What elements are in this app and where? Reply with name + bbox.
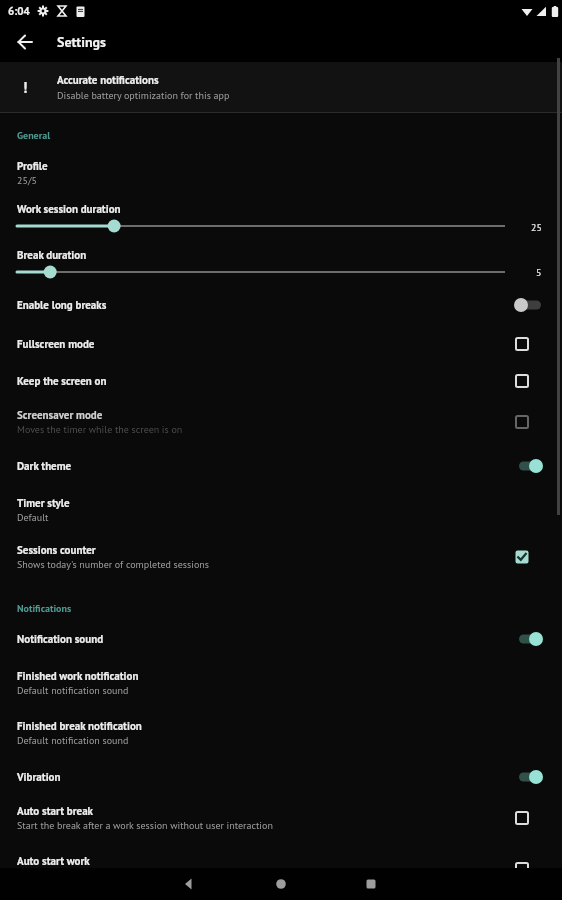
button[interactable]: Timer style <box>0 487 562 533</box>
staticText: 25/5 <box>17 174 37 187</box>
button[interactable]: Vibration <box>0 758 562 795</box>
button[interactable]: Enable long breaks <box>0 285 562 325</box>
staticText: Default <box>17 511 49 524</box>
button[interactable]: Fullscreen mode <box>0 325 562 362</box>
staticText: Moves the timer while the screen is on <box>17 423 183 436</box>
staticText: Sessions counter <box>17 543 96 557</box>
staticText: Enable long breaks <box>17 298 107 312</box>
button[interactable]: Work session duration <box>0 196 562 240</box>
staticText: Finished work notification <box>17 669 139 683</box>
staticText: Notification sound <box>17 632 104 646</box>
button[interactable]: Auto start break <box>0 795 562 841</box>
staticText: Work session duration <box>17 202 121 216</box>
staticText: 25 <box>531 221 542 234</box>
staticText: Shows today's number of completed sessio… <box>17 558 209 571</box>
staticText: 6:04 <box>8 4 30 18</box>
button[interactable] <box>17 34 33 50</box>
staticText: Fullscreen mode <box>17 337 95 351</box>
staticText: Timer style <box>17 496 70 510</box>
button[interactable]: Keep the screen on <box>0 362 562 399</box>
staticText: Auto start work <box>17 854 90 868</box>
button[interactable]: Finished work notification <box>0 658 562 708</box>
staticText: ! <box>23 78 28 97</box>
staticText: Default notification sound <box>17 684 129 697</box>
staticText: Finished break notification <box>17 719 142 733</box>
staticText: Break duration <box>17 248 87 262</box>
button[interactable]: Auto start work <box>0 841 562 900</box>
staticText: Default notification sound <box>17 734 129 747</box>
button[interactable] <box>364 877 378 891</box>
staticText: Settings <box>57 33 107 51</box>
staticText: General <box>17 129 51 142</box>
button[interactable]: ! <box>0 62 562 112</box>
staticText: Vibration <box>17 770 61 784</box>
staticText: Accurate notifications <box>57 73 159 87</box>
button[interactable] <box>274 877 288 891</box>
staticText: Start the break after a work session wit… <box>17 819 273 832</box>
button[interactable]: Notification sound <box>0 620 562 658</box>
button[interactable] <box>182 877 196 891</box>
staticText: 5 <box>536 266 542 279</box>
button[interactable]: Sessions counter <box>0 533 562 580</box>
button[interactable]: Dark theme <box>0 445 562 487</box>
staticText: Disable battery optimization for this ap… <box>57 89 230 102</box>
staticText: Notifications <box>17 602 72 615</box>
staticText: Dark theme <box>17 459 72 473</box>
button[interactable]: Profile <box>0 150 562 196</box>
staticText: Keep the screen on <box>17 374 107 388</box>
staticText: Screensaver mode <box>17 408 103 422</box>
button[interactable]: Break duration <box>0 240 562 285</box>
staticText: Profile <box>17 159 48 173</box>
button[interactable]: Screensaver mode <box>0 399 562 445</box>
button[interactable]: Finished break notification <box>0 708 562 758</box>
staticText: Auto start break <box>17 804 93 818</box>
